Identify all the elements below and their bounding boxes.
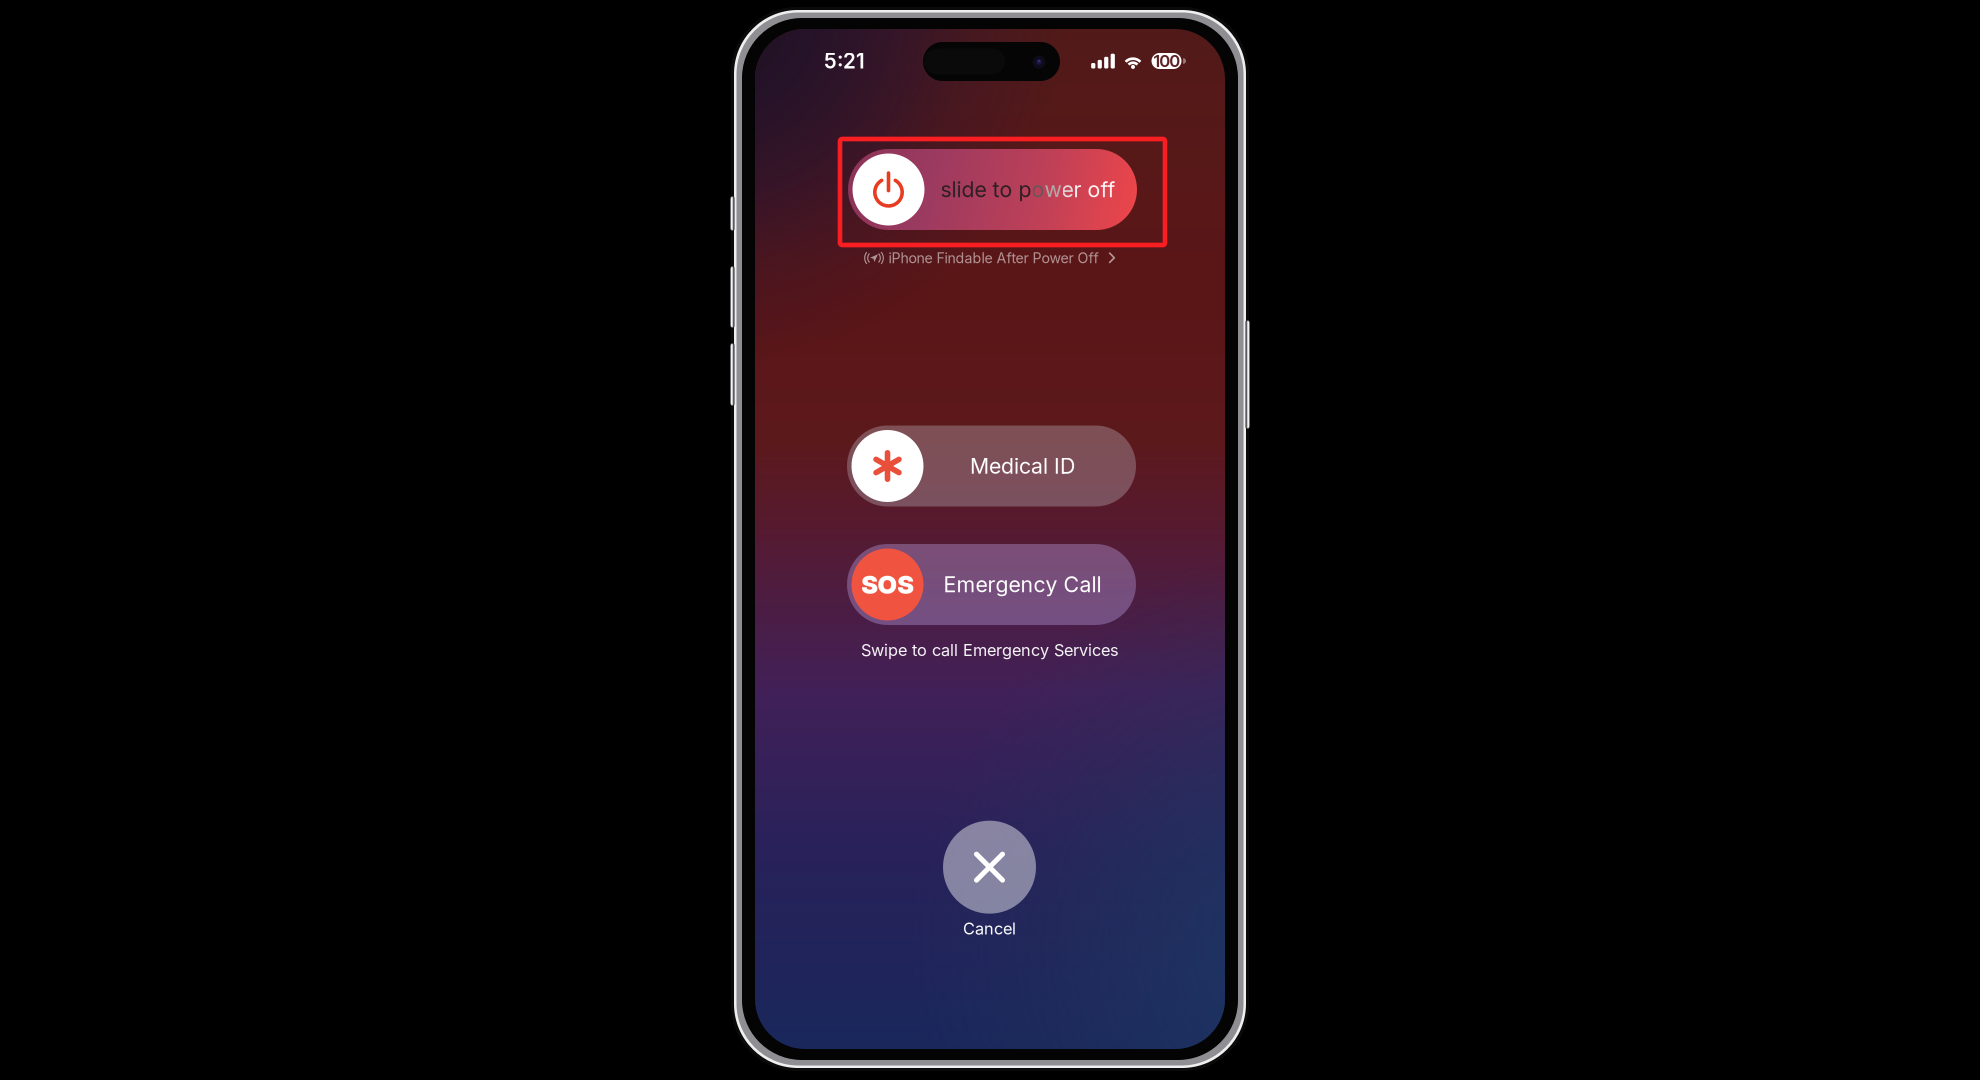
- staticText: Medical ID: [970, 453, 1075, 479]
- button[interactable]: Emergency Call: [847, 544, 1136, 625]
- staticText: e: [1061, 177, 1073, 202]
- staticText: Cancel: [963, 919, 1016, 938]
- staticText: iPhone Findable After Power Off: [888, 249, 1098, 266]
- button[interactable]: Medical ID: [847, 425, 1136, 506]
- staticText: Swipe to call Emergency Services: [861, 640, 1119, 660]
- button[interactable]: slide to p: [848, 149, 1137, 230]
- staticText: o: [1031, 177, 1044, 202]
- staticText: w: [1044, 177, 1061, 202]
- staticText: 100: [1153, 51, 1179, 71]
- button[interactable]: Cancel: [929, 821, 1049, 938]
- button[interactable]: iPhone Findable After Power Off: [863, 248, 1116, 268]
- staticText: Emergency Call: [943, 572, 1101, 597]
- staticText: slide to p: [940, 177, 1031, 202]
- staticText: SOS: [861, 569, 913, 600]
- staticText: 5:21: [824, 48, 865, 73]
- staticText: r off: [1073, 177, 1115, 202]
